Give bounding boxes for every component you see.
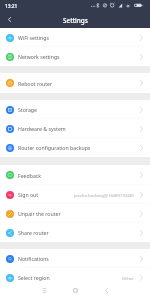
staticText: Feedback <box>18 172 42 179</box>
button[interactable]: Storage <box>0 100 150 119</box>
button[interactable]: Back <box>4 15 15 24</box>
staticText: Share router <box>18 229 49 236</box>
staticText: Select region <box>18 274 50 281</box>
button[interactable]: WiFi settings <box>0 28 150 47</box>
staticText: Storage <box>18 106 37 113</box>
button[interactable]: Select region <box>0 268 150 287</box>
staticText: Sign out <box>18 191 39 198</box>
button[interactable]: Feedback <box>0 165 150 185</box>
staticText: Settings <box>63 16 88 25</box>
button[interactable]: Router configuration backups <box>0 138 150 157</box>
staticText: Other <box>122 275 134 281</box>
staticText: Reboot router <box>18 80 53 87</box>
button[interactable]: Recents <box>39 287 50 294</box>
button[interactable]: Hardware & system <box>0 119 150 138</box>
staticText: Network settings <box>18 53 60 60</box>
staticText: Hardware & system <box>18 125 66 132</box>
button[interactable]: Home <box>70 287 81 294</box>
staticText: Router configuration backups <box>18 144 91 151</box>
staticText: Unpair the router <box>18 210 61 217</box>
staticText: 13:21 <box>5 3 18 10</box>
staticText: joscha.becking@ (448973248) <box>74 192 134 198</box>
button[interactable]: Share router <box>0 223 150 242</box>
button[interactable]: Notifications <box>0 249 150 268</box>
button[interactable]: Sign out <box>0 185 150 204</box>
staticText: WiFi settings <box>18 34 49 41</box>
button[interactable]: Back <box>101 287 112 294</box>
button[interactable]: Network settings <box>0 47 150 66</box>
button[interactable]: Reboot router <box>0 73 150 93</box>
button[interactable]: Unpair the router <box>0 204 150 223</box>
staticText: Notifications <box>18 255 49 262</box>
